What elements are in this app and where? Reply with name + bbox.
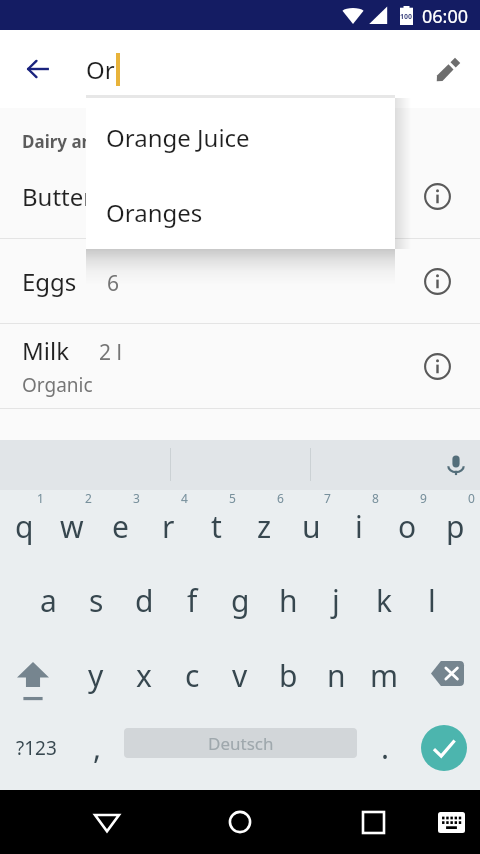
- staticText: l: [428, 580, 436, 621]
- button[interactable]: Back: [14, 45, 62, 93]
- staticText: s: [89, 580, 104, 621]
- button[interactable]: y: [72, 640, 120, 710]
- staticText: n: [327, 655, 346, 696]
- button[interactable]: Item details: [420, 349, 454, 383]
- staticText: 6: [277, 490, 284, 506]
- button[interactable]: v: [216, 640, 264, 710]
- staticText: Dairy and Eggs: [22, 130, 148, 153]
- staticText: b: [279, 655, 298, 696]
- staticText: 06:00: [422, 4, 469, 29]
- button[interactable]: x: [120, 640, 168, 710]
- staticText: d: [135, 580, 154, 621]
- button[interactable]: a: [24, 565, 72, 635]
- button[interactable]: 9: [383, 485, 431, 555]
- staticText: 5: [229, 490, 236, 506]
- staticText: Deutsch: [208, 732, 274, 755]
- button[interactable]: 6: [240, 485, 288, 555]
- button[interactable]: Enter: [421, 725, 467, 771]
- staticText: y: [88, 655, 104, 696]
- button[interactable]: s: [72, 565, 120, 635]
- button[interactable]: Oranges: [86, 175, 395, 249]
- button[interactable]: Hide keyboard: [423, 790, 479, 854]
- button[interactable]: Home: [210, 790, 270, 854]
- button[interactable]: c: [168, 640, 216, 710]
- staticText: Organic: [22, 372, 93, 398]
- button[interactable]: ,: [74, 712, 120, 784]
- button[interactable]: Edit: [424, 45, 472, 93]
- staticText: w: [60, 506, 84, 547]
- button[interactable]: Butter: [0, 154, 480, 239]
- staticText: ,: [93, 727, 102, 768]
- button[interactable]: h: [264, 565, 312, 635]
- staticText: 4: [181, 490, 188, 506]
- button[interactable]: 2: [48, 485, 96, 555]
- button[interactable]: 7: [287, 485, 335, 555]
- button[interactable]: Orange Juice: [86, 99, 395, 175]
- staticText: 7: [324, 490, 331, 506]
- button[interactable]: 0: [431, 485, 479, 555]
- button[interactable]: Item details: [420, 179, 454, 213]
- staticText: Eggs: [22, 265, 77, 298]
- staticText: g: [231, 580, 250, 621]
- staticText: Milk: [22, 334, 69, 367]
- button[interactable]: f: [168, 565, 216, 635]
- staticText: Butter: [22, 180, 94, 213]
- staticText: 250 g: [124, 184, 179, 213]
- staticText: r: [162, 506, 175, 547]
- staticText: m: [370, 655, 399, 696]
- staticText: u: [302, 506, 321, 547]
- staticText: q: [15, 506, 34, 547]
- staticText: p: [446, 506, 465, 547]
- button[interactable]: 3: [96, 485, 144, 555]
- staticText: 2 l: [99, 338, 122, 367]
- staticText: 100: [400, 12, 413, 22]
- button[interactable]: b: [264, 640, 312, 710]
- staticText: h: [279, 580, 298, 621]
- staticText: v: [232, 655, 248, 696]
- button[interactable]: j: [312, 565, 360, 635]
- staticText: o: [398, 506, 417, 547]
- staticText: i: [355, 506, 363, 547]
- staticText: Orange Juice: [106, 121, 250, 154]
- button[interactable]: Deutsch: [124, 728, 357, 758]
- staticText: ?123: [16, 735, 57, 761]
- staticText: z: [257, 506, 272, 547]
- button[interactable]: k: [360, 565, 408, 635]
- staticText: 9: [420, 490, 427, 506]
- button[interactable]: n: [312, 640, 360, 710]
- button[interactable]: Back: [77, 790, 137, 854]
- button[interactable]: Voice input: [436, 445, 476, 485]
- button[interactable]: .: [362, 712, 408, 784]
- button[interactable]: 4: [144, 485, 192, 555]
- button[interactable]: 5: [192, 485, 240, 555]
- staticText: 8: [372, 490, 379, 506]
- button[interactable]: Recents: [343, 790, 403, 854]
- staticText: k: [376, 580, 393, 621]
- staticText: t: [211, 506, 222, 547]
- staticText: 1: [37, 490, 44, 506]
- staticText: 0: [468, 490, 475, 506]
- staticText: Oranges: [106, 196, 203, 229]
- button[interactable]: g: [216, 565, 264, 635]
- button[interactable]: Item details: [420, 264, 454, 298]
- staticText: 6: [107, 269, 120, 298]
- button[interactable]: ?123: [0, 712, 72, 784]
- button[interactable]: Backspace: [412, 640, 480, 710]
- button[interactable]: Milk: [0, 324, 480, 409]
- staticText: 2: [85, 490, 92, 506]
- button[interactable]: m: [360, 640, 408, 710]
- button[interactable]: Eggs: [0, 239, 480, 324]
- staticText: .: [381, 727, 390, 768]
- button[interactable]: 1: [0, 485, 48, 555]
- button[interactable]: d: [120, 565, 168, 635]
- staticText: f: [187, 580, 198, 621]
- staticText: e: [112, 506, 129, 547]
- staticText: c: [185, 655, 200, 696]
- staticText: x: [136, 655, 152, 696]
- button[interactable]: l: [408, 565, 456, 635]
- staticText: 3: [133, 490, 140, 506]
- staticText: Or: [86, 53, 115, 86]
- button[interactable]: 8: [335, 485, 383, 555]
- staticText: j: [332, 580, 340, 621]
- button[interactable]: Shift: [0, 640, 68, 710]
